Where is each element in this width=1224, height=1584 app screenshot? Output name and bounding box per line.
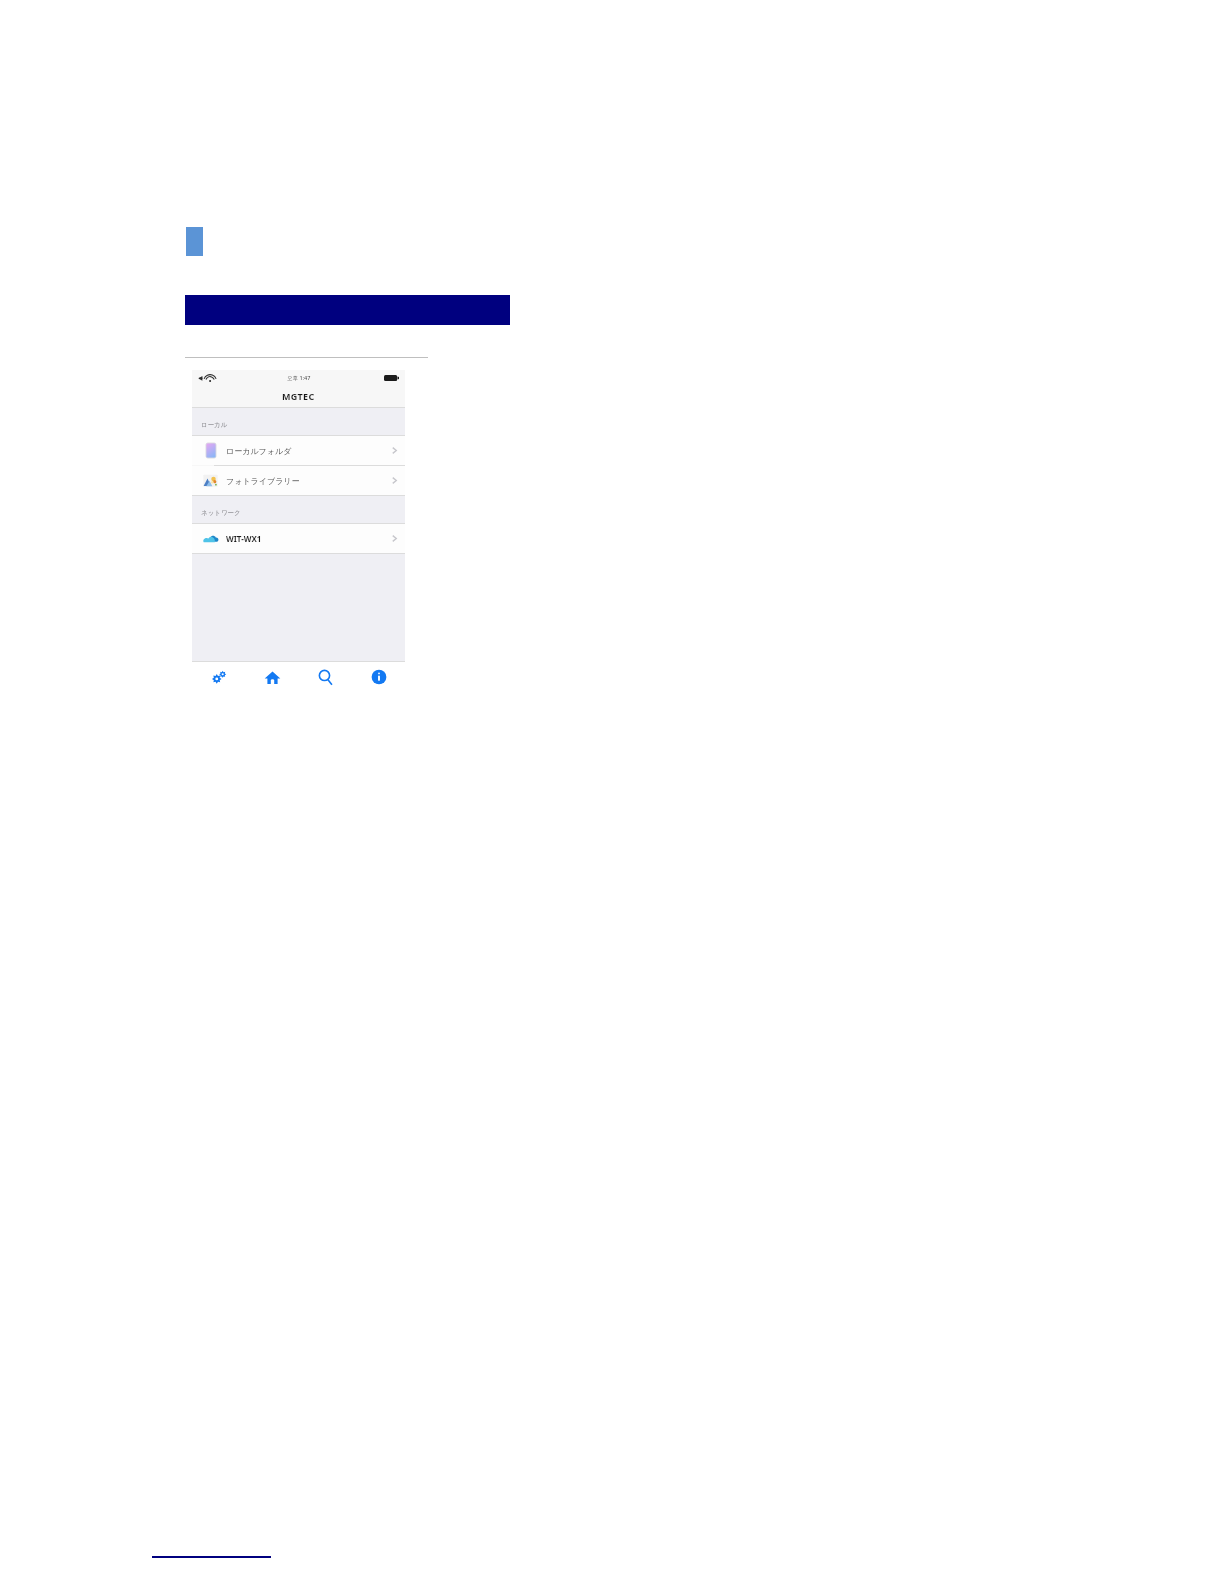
staticText: ローカルフォルダ [226,446,292,456]
staticText: 오후 1:47 [287,374,311,382]
staticText: MGTEC [282,390,315,402]
button[interactable]: Home [246,662,299,692]
staticText: ローカル [201,421,228,429]
button[interactable]: フォトライブラリー [192,466,405,495]
staticText: WIT-WX1 [226,533,262,544]
button[interactable]: Settings [192,662,246,692]
button[interactable]: Search [299,662,352,692]
button[interactable]: ローカルフォルダ [192,436,405,465]
staticText: フォトライブラリー [226,476,300,486]
button[interactable]: Info [352,662,405,692]
button[interactable]: WIT-WX1 [192,524,405,553]
staticText: ネットワーク [201,509,241,517]
